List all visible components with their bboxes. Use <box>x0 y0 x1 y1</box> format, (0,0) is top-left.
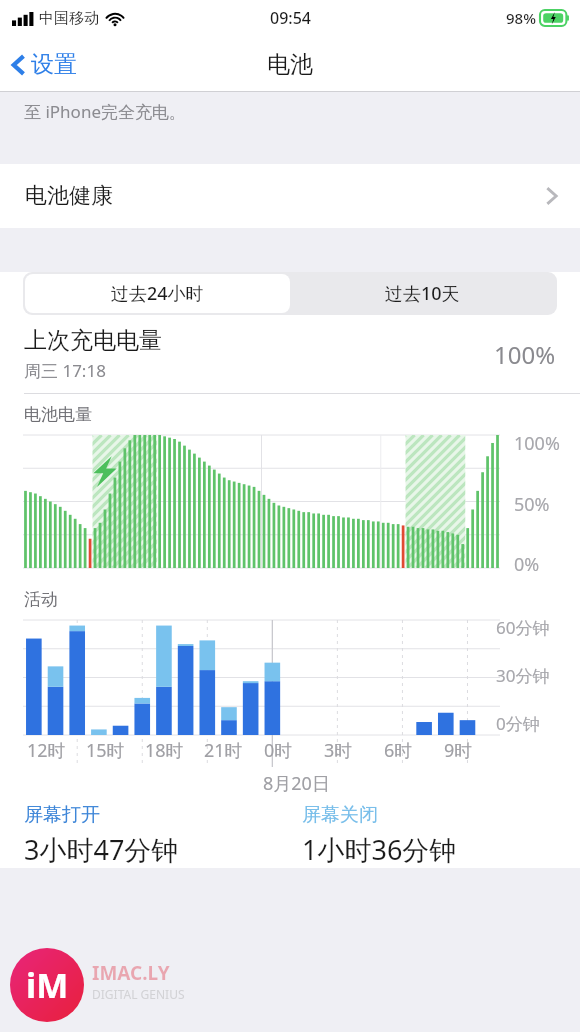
staticText: 上次充电电量 <box>24 326 162 355</box>
staticText: 屏幕打开 <box>24 803 100 827</box>
staticText: 1小时36分钟 <box>302 831 457 868</box>
staticText: 中国移动 <box>39 9 99 28</box>
staticText: 设置 <box>31 50 77 79</box>
button[interactable]: 设置 <box>0 44 89 85</box>
staticText: 15时 <box>86 738 125 763</box>
staticText: DIGITAL GENIUS <box>92 986 185 1002</box>
staticText: 电池电量 <box>24 404 92 425</box>
staticText: 过去24小时 <box>111 281 204 306</box>
staticText: 60分钟 <box>496 616 550 639</box>
staticText: 0% <box>514 552 540 577</box>
staticText: 6时 <box>384 738 413 763</box>
staticText: 0分钟 <box>496 712 540 735</box>
staticText: 周三 17:18 <box>24 359 106 382</box>
staticText: 18时 <box>145 738 184 763</box>
staticText: 3时 <box>324 738 353 763</box>
staticText: 8月20日 <box>263 771 330 796</box>
staticText: iM <box>26 962 69 1008</box>
button[interactable]: 过去24小时 <box>25 274 290 313</box>
staticText: 过去10天 <box>385 281 460 306</box>
staticText: 09:54 <box>270 7 311 29</box>
button[interactable]: 过去10天 <box>290 274 555 313</box>
staticText: 30分钟 <box>496 664 550 687</box>
staticText: 电池健康 <box>25 182 113 210</box>
staticText: 屏幕关闭 <box>302 803 378 827</box>
staticText: 100% <box>514 431 560 456</box>
staticText: 21时 <box>204 738 243 763</box>
staticText: 电池 <box>267 50 313 79</box>
staticText: 50% <box>514 492 550 517</box>
button[interactable]: 电池健康 <box>0 164 580 228</box>
staticText: 12时 <box>27 738 66 763</box>
staticText: 0时 <box>264 738 293 763</box>
staticText: IMAC.LY <box>92 960 170 986</box>
staticText: 至 iPhone完全充电。 <box>24 100 186 123</box>
staticText: 9时 <box>444 738 473 763</box>
staticText: 100% <box>494 338 556 371</box>
staticText: 活动 <box>24 589 58 610</box>
staticText: 3小时47分钟 <box>24 831 179 868</box>
staticText: 98% <box>506 8 536 28</box>
